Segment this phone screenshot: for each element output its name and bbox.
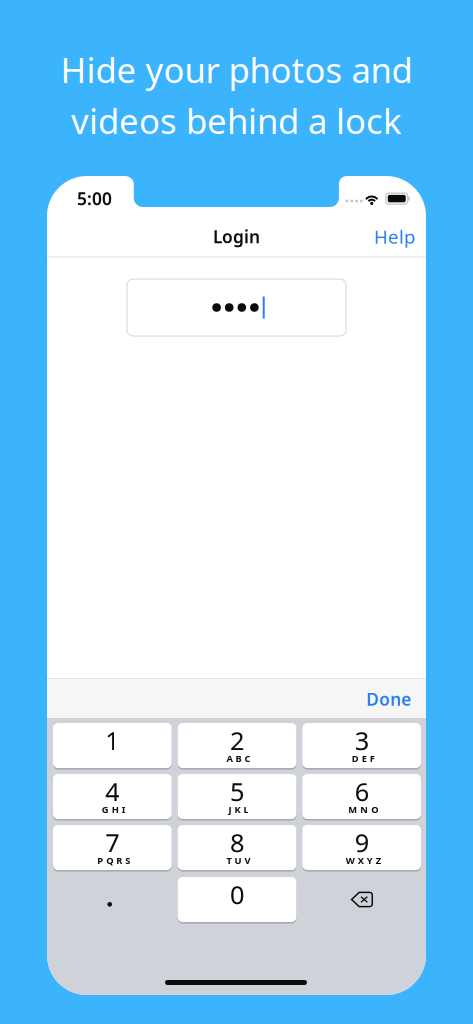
staticText: 7 (105, 826, 119, 859)
button[interactable]: 8 (178, 825, 296, 870)
button[interactable]: Done (359, 679, 419, 719)
button[interactable]: 9 (302, 825, 421, 870)
button[interactable]: 1 (53, 723, 172, 768)
staticText: 8 (230, 826, 244, 859)
staticText: 4 (105, 775, 119, 808)
button[interactable]: Period (53, 877, 172, 922)
staticText: 1 (105, 724, 119, 757)
staticText: 5 (230, 775, 244, 808)
staticText: Hide your photos and (60, 46, 412, 92)
staticText: 0 (230, 878, 244, 911)
staticText: Done (366, 687, 411, 710)
button[interactable]: 3 (302, 723, 421, 768)
button[interactable]: 7 (53, 825, 172, 870)
staticText: DEF (352, 752, 375, 765)
button[interactable]: 5 (178, 774, 296, 819)
staticText: GHI (102, 803, 126, 816)
staticText: ABC (226, 752, 250, 765)
staticText: 3 (355, 724, 369, 757)
staticText: 9 (355, 826, 369, 859)
button[interactable]: 2 (178, 723, 296, 768)
staticText: WXYZ (346, 854, 381, 867)
button[interactable]: 4 (53, 774, 172, 819)
staticText: 5:00 (77, 187, 112, 210)
staticText: Help (374, 224, 415, 249)
staticText: videos behind a lock (71, 97, 402, 143)
staticText: TUV (226, 854, 250, 867)
staticText: 6 (355, 775, 369, 808)
staticText: 2 (230, 724, 244, 757)
staticText: MNO (348, 803, 378, 816)
staticText: Login (213, 225, 260, 248)
button[interactable]: 6 (302, 774, 421, 819)
staticText: JKL (228, 803, 248, 816)
button[interactable]: 0 (178, 877, 296, 922)
button[interactable]: Help (363, 217, 426, 255)
button[interactable]: Delete (302, 877, 421, 922)
staticText: PQRS (97, 854, 130, 867)
